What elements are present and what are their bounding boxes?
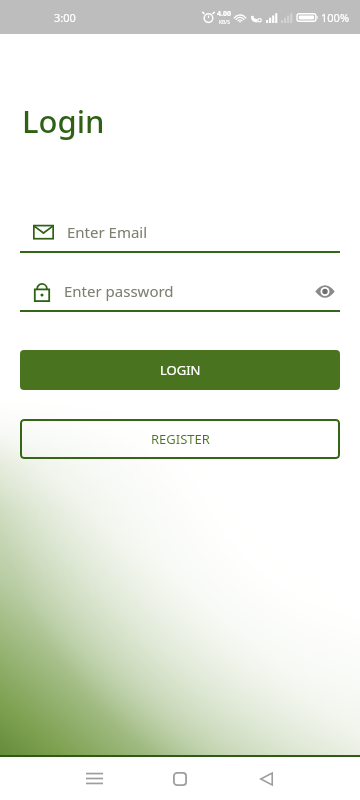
button[interactable]: LOGIN [20,350,340,390]
button[interactable]: Show password [310,276,340,306]
button[interactable]: Home [137,757,223,800]
staticText: REGISTER [151,430,210,448]
staticText: Login [22,100,105,142]
staticText: KB/S [219,19,230,26]
staticText: 100% [321,10,350,25]
button[interactable]: Back [223,757,309,800]
button[interactable]: Recent apps [51,757,137,800]
button[interactable]: REGISTER [20,419,340,459]
staticText: LOGIN [160,361,201,379]
staticText: Enter password [64,281,174,301]
button[interactable]: Enter password [20,272,340,312]
staticText: 4.00 [217,9,231,19]
button[interactable]: Enter Email [20,213,340,253]
staticText: Enter Email [67,222,148,242]
staticText: 3:00 [54,10,76,25]
